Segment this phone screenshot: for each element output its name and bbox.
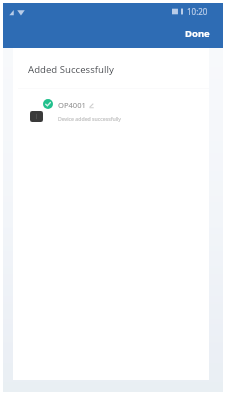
button[interactable]: Rename device bbox=[88, 102, 95, 109]
staticText: Done bbox=[185, 27, 210, 40]
staticText: Device added successfully bbox=[58, 115, 121, 122]
staticText: Added Successfully bbox=[28, 63, 114, 76]
button[interactable]: Done bbox=[171, 20, 223, 47]
staticText: 10:20 bbox=[187, 6, 208, 17]
staticText: OP4001 bbox=[58, 100, 86, 110]
button[interactable]: OP4001 bbox=[3, 99, 223, 122]
